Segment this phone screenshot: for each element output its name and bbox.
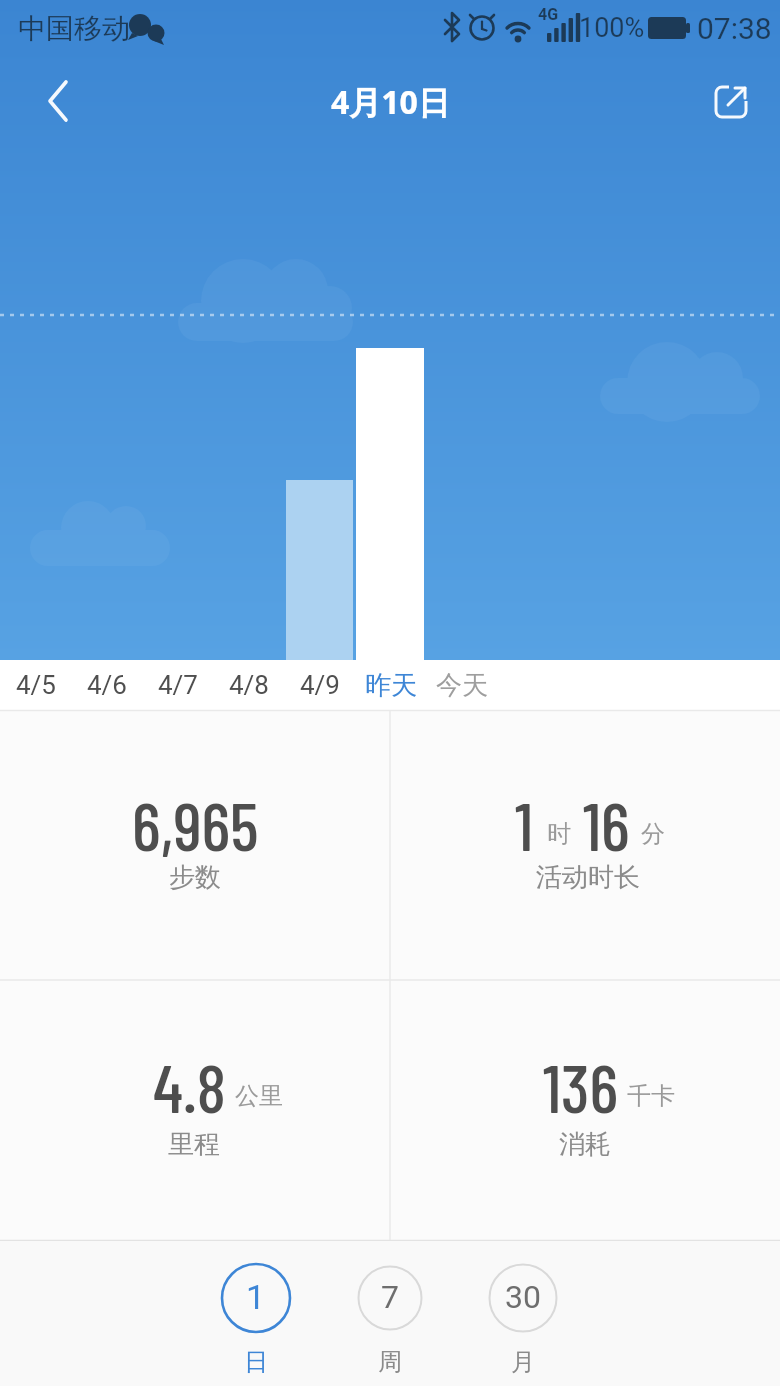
staticText: 月 [511,1347,535,1377]
staticText: 分 [641,819,665,849]
staticText: 里程 [168,1128,220,1161]
staticText: 昨天 [365,669,417,702]
button[interactable]: 4/9 [287,662,353,708]
staticText: 4/8 [229,670,269,700]
button[interactable]: 4/5 [3,662,69,708]
button[interactable]: 4/6 [74,662,140,708]
button[interactable]: 今天 [429,662,495,708]
staticText: 4G [538,5,559,24]
staticText: 4/6 [87,670,127,700]
button[interactable] [478,1258,568,1380]
staticText: 16 [583,783,630,865]
button[interactable] [28,73,88,129]
staticText: 日 [244,1347,268,1377]
button[interactable] [345,1258,435,1380]
staticText: 4/5 [16,670,56,700]
staticText: 周 [378,1347,402,1377]
staticText: 公里 [235,1081,283,1111]
staticText: 4/7 [158,670,198,700]
staticText: 07:38 [697,11,772,46]
staticText: 4.8 [153,1045,226,1127]
staticText: 30 [505,1278,541,1316]
staticText: 时 [547,819,571,849]
staticText: 今天 [436,669,488,702]
button[interactable]: 4/7 [145,662,211,708]
button[interactable] [702,73,762,129]
button[interactable] [211,1258,301,1380]
staticText: 136 [543,1045,619,1127]
staticText: 千卡 [627,1081,675,1111]
staticText: 1 [246,1277,266,1317]
staticText: 100% [579,12,645,44]
staticText: 消耗 [559,1128,611,1161]
staticText: 活动时长 [536,861,640,894]
staticText: 步数 [169,861,221,894]
staticText: 1 [515,783,534,865]
button[interactable]: 昨天 [358,662,424,708]
staticText: 7 [381,1278,399,1316]
staticText: 中国移动 [18,11,130,46]
staticText: 4/9 [300,670,340,700]
staticText: 6,965 [132,783,259,865]
staticText: 4月10日 [331,80,450,124]
button[interactable]: 4/8 [216,662,282,708]
